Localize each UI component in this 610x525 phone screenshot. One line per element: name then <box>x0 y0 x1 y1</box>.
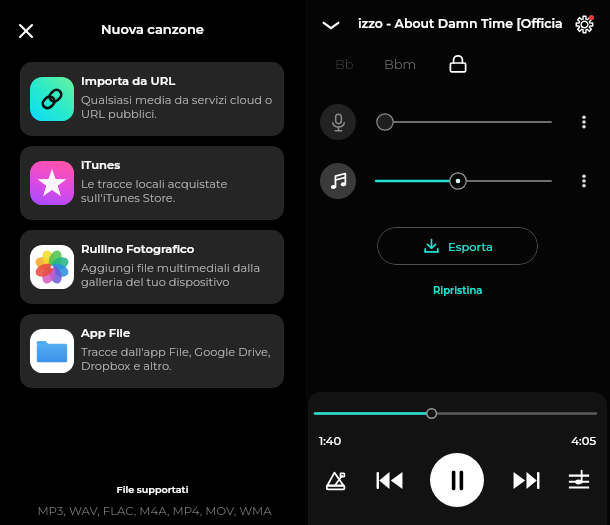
staticText: URL pubblici. <box>81 107 157 121</box>
staticText: Bbm <box>384 56 417 72</box>
button[interactable]: Altro <box>566 104 602 140</box>
button[interactable]: Ripristina <box>305 280 610 300</box>
button[interactable]: App File <box>20 314 284 388</box>
staticText: 1:40 <box>319 434 342 448</box>
button[interactable]: Bbm <box>382 51 418 77</box>
staticText: sull'iTunes Store. <box>81 191 176 205</box>
button[interactable]: Metronomo <box>318 463 354 499</box>
staticText: Dropbox e altro. <box>81 359 172 373</box>
staticText: Rullino Fotografico <box>81 242 195 256</box>
button[interactable]: Successivo <box>508 462 544 498</box>
staticText: Nuova canzone <box>0 21 305 37</box>
button[interactable]: Chiudi <box>12 17 40 45</box>
staticText: Le tracce locali acquistate <box>81 177 228 191</box>
staticText: Esporta <box>448 240 493 254</box>
button[interactable]: Spartito <box>561 462 597 498</box>
staticText: galleria del tuo dispositivo <box>81 275 230 289</box>
staticText: Importa da URL <box>81 74 176 88</box>
staticText: File supportati <box>0 484 305 496</box>
staticText: Qualsiasi media da servizi cloud o <box>81 93 273 107</box>
button[interactable]: iTunes <box>20 146 284 220</box>
button[interactable]: Musica <box>320 163 356 199</box>
button[interactable]: Microfono <box>320 104 356 140</box>
button[interactable]: Esporta <box>377 227 538 265</box>
staticText: Tracce dall'app File, Google Drive, <box>81 345 271 359</box>
button[interactable]: Precedente <box>371 462 407 498</box>
staticText: App File <box>81 326 131 340</box>
staticText: iTunes <box>81 158 121 172</box>
button[interactable]: Importa da URL <box>20 62 284 136</box>
staticText: Bb <box>335 56 354 72</box>
staticText: Ripristina <box>433 284 483 296</box>
button[interactable]: Impostazioni <box>568 8 600 40</box>
button[interactable]: Comprimi <box>317 11 345 39</box>
button[interactable]: Bb <box>329 51 359 77</box>
button[interactable]: Altro <box>566 163 602 199</box>
staticText: 4:05 <box>548 434 596 448</box>
staticText: izzo - About Damn Time [Official Video] <box>358 16 563 31</box>
staticText: Aggiungi file multimediali dalla <box>81 261 261 275</box>
button[interactable]: Pausa <box>430 453 484 507</box>
staticText: MP3, WAV, FLAC, M4A, MP4, MOV, WMA <box>2 504 307 518</box>
button[interactable]: Blocca <box>443 49 473 79</box>
button[interactable]: Rullino Fotografico <box>20 230 284 304</box>
